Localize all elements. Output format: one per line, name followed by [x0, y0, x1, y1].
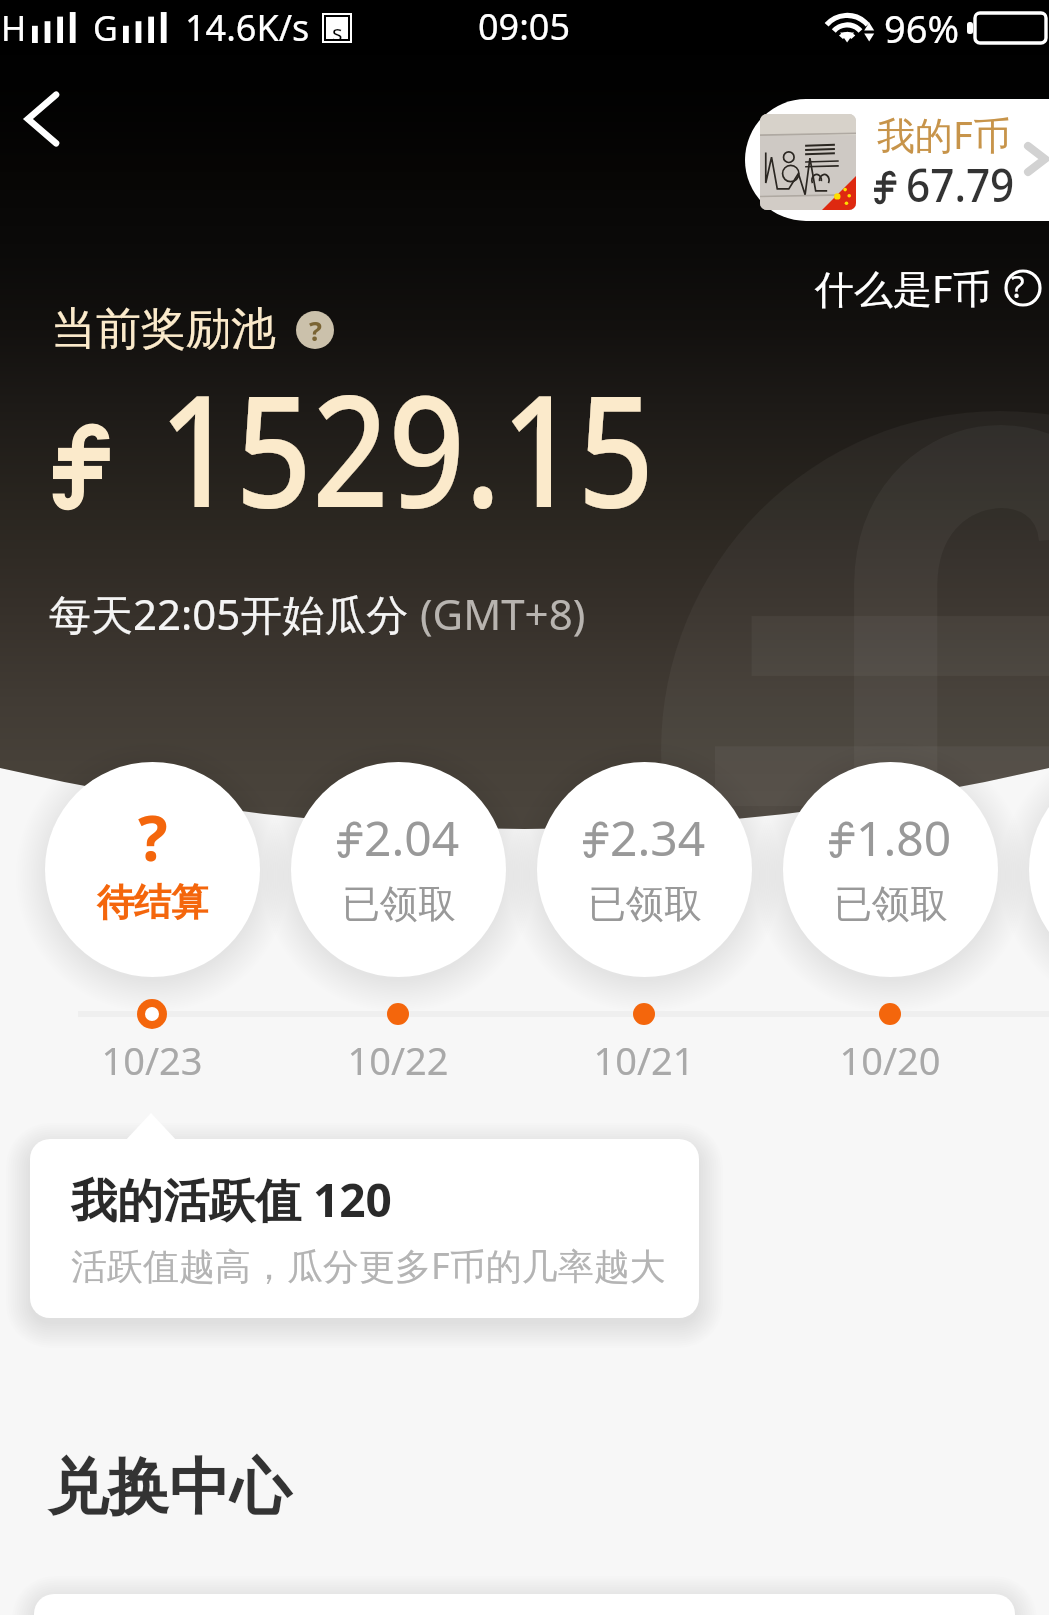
staticText: 已领取 [834, 880, 948, 928]
button[interactable]: 2.04 [291, 762, 506, 977]
staticText: 1529.15 [159, 342, 655, 552]
staticText: 96% [884, 2, 960, 54]
staticText: 待结算 [97, 879, 208, 926]
button[interactable]: 1.95 [1029, 762, 1049, 977]
staticText: ? [138, 795, 168, 879]
staticText: 什么是F币 [815, 261, 992, 314]
staticText: ? [309, 312, 322, 349]
button[interactable]: 我的F币 67.79 [745, 99, 1049, 221]
staticText: 10/22 [347, 1034, 449, 1086]
staticText: 已领取 [342, 880, 456, 928]
staticText: 1.80 [856, 805, 952, 870]
staticText: 每天22:05开始瓜分 [49, 585, 420, 642]
staticText: 已领取 [588, 880, 702, 928]
staticText: 我的F币 [877, 108, 1011, 160]
staticText: s [332, 17, 343, 39]
staticText: 10/20 [839, 1034, 941, 1086]
button[interactable]: 2.34 [537, 762, 752, 977]
staticText: 2.34 [610, 805, 706, 870]
staticText: 10/21 [593, 1034, 695, 1086]
staticText: 14.6K/s [185, 3, 310, 52]
staticText: 我的活跃值 120 [71, 1168, 392, 1231]
staticText: 67.79 [906, 154, 1015, 215]
staticText: 兑换中心 [47, 1449, 291, 1526]
staticText: G [93, 5, 118, 51]
button[interactable]: 什么是F币 [813, 259, 1044, 316]
staticText: H [1, 5, 27, 51]
staticText: (GMT+8) [420, 585, 586, 642]
staticText: 活跃值越高，瓜分更多F币的几率越大 [71, 1241, 666, 1290]
button[interactable]: 1.80 [783, 762, 998, 977]
staticText: 10/23 [101, 1034, 203, 1086]
staticText: 当前奖励池 [51, 301, 276, 358]
staticText: 09:05 [478, 2, 571, 51]
button[interactable]: 奖励池说明 [296, 311, 334, 349]
staticText: 2.04 [364, 805, 460, 870]
button[interactable]: 我的活跃值 120 [30, 1139, 699, 1318]
staticText: ? [1011, 265, 1025, 307]
button[interactable]: ? [45, 762, 260, 977]
button[interactable]: Back [0, 76, 85, 162]
